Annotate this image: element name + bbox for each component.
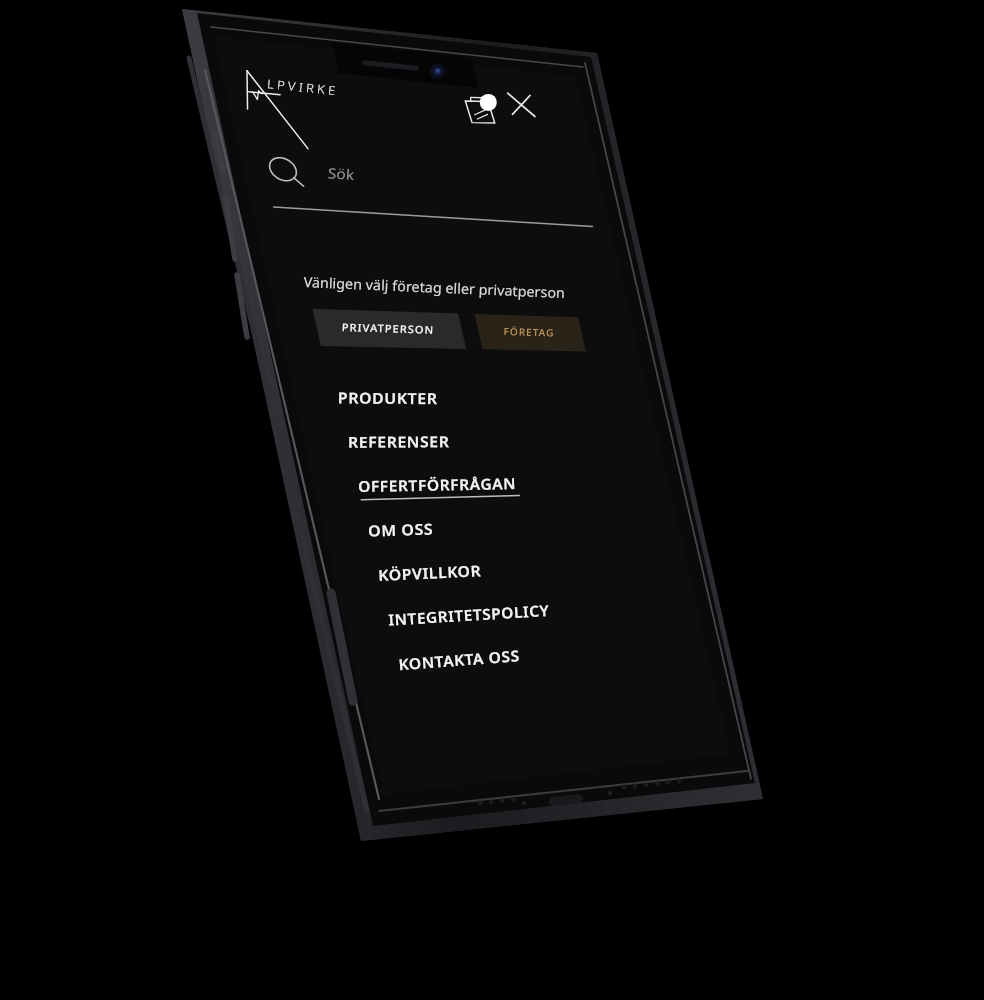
button[interactable]: Cart	[436, 32, 494, 92]
button[interactable]: Köpvillkor	[348, 522, 620, 568]
button[interactable]: Produkter	[298, 340, 570, 386]
button[interactable]: Kontakta oss	[372, 612, 644, 658]
button[interactable]: Privatperson	[288, 272, 440, 330]
button[interactable]: Företag	[444, 274, 552, 330]
button[interactable]: Integritetspolicy	[360, 566, 632, 612]
button[interactable]: Offertförfrågan	[322, 432, 594, 478]
button[interactable]: Om oss	[336, 478, 608, 524]
button[interactable]: Alpvirke home	[196, 22, 336, 84]
button[interactable]: Search	[254, 118, 576, 192]
button[interactable]: Close menu	[492, 38, 552, 98]
button[interactable]: Referenser	[308, 386, 580, 432]
